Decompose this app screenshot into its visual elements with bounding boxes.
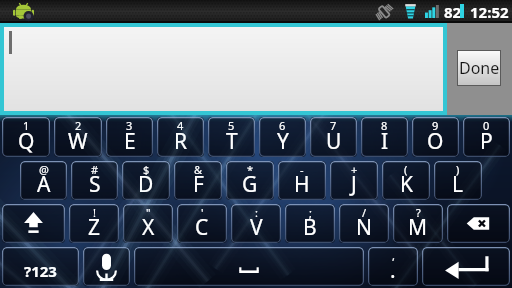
staticText: Q — [18, 127, 35, 156]
staticText: W — [68, 127, 88, 156]
staticText: : — [255, 205, 258, 220]
button[interactable]: B — [285, 204, 335, 243]
staticText: S — [89, 170, 101, 199]
button[interactable]: H — [278, 161, 326, 200]
staticText: O — [427, 127, 444, 156]
staticText: N — [356, 213, 372, 242]
button[interactable]: space — [134, 247, 364, 286]
staticText: A — [37, 170, 51, 199]
button[interactable]: A — [20, 161, 67, 200]
button[interactable]: U — [310, 117, 357, 157]
button[interactable]: I — [361, 117, 408, 157]
staticText: J — [351, 170, 357, 199]
button[interactable]: S — [71, 161, 118, 200]
button[interactable]: T — [208, 117, 255, 157]
button[interactable]: . — [368, 247, 418, 286]
staticText: C — [195, 213, 209, 242]
staticText: E — [124, 127, 136, 156]
staticText: R — [174, 127, 188, 156]
button[interactable]: G — [226, 161, 274, 200]
staticText: Done — [459, 57, 500, 79]
staticText: 9 — [432, 118, 439, 133]
button[interactable]: E — [106, 117, 153, 157]
button[interactable]: ?123 — [2, 247, 79, 286]
button[interactable]: Y — [259, 117, 306, 157]
button[interactable]: enter — [422, 247, 510, 286]
staticText: , — [392, 248, 395, 263]
staticText: 4 — [177, 118, 184, 133]
staticText: M — [408, 213, 428, 242]
button[interactable]: Z — [69, 204, 119, 243]
staticText: I — [381, 127, 389, 156]
button[interactable]: W — [54, 117, 102, 157]
staticText: T — [226, 127, 238, 156]
staticText: * — [247, 162, 254, 177]
staticText: P — [480, 127, 493, 156]
staticText: D — [138, 170, 154, 199]
staticText: " — [146, 205, 151, 220]
button[interactable]: X — [123, 204, 173, 243]
staticText: ; — [309, 205, 312, 220]
staticText: @ — [39, 162, 49, 177]
button[interactable]: Q — [2, 117, 50, 157]
staticText: + — [351, 162, 358, 177]
staticText: ? — [416, 205, 421, 220]
staticText: & — [194, 162, 203, 177]
staticText: / — [362, 205, 367, 220]
staticText: 2 — [75, 118, 82, 133]
staticText: G — [242, 170, 258, 199]
staticText: X — [142, 213, 155, 242]
button[interactable]: M — [393, 204, 443, 243]
staticText: 7 — [330, 118, 337, 133]
staticText: - — [300, 162, 304, 177]
staticText: # — [91, 162, 99, 177]
button[interactable]: L — [434, 161, 482, 200]
staticText: . — [390, 256, 396, 285]
button[interactable]: V — [231, 204, 281, 243]
button[interactable]: C — [177, 204, 227, 243]
staticText: H — [294, 170, 310, 199]
staticText: 6 — [279, 118, 286, 133]
button[interactable]: D — [122, 161, 170, 200]
staticText: U — [326, 127, 342, 156]
staticText: ) — [456, 162, 460, 177]
staticText: F — [193, 170, 204, 199]
staticText: 12:52 — [470, 2, 509, 22]
staticText: 1 — [23, 118, 30, 133]
button[interactable]: P — [463, 117, 510, 157]
staticText: Y — [277, 127, 289, 156]
staticText: 3 — [126, 118, 133, 133]
staticText: K — [400, 170, 413, 199]
button[interactable]: Done — [458, 51, 500, 85]
button[interactable]: K — [382, 161, 430, 200]
staticText: L — [452, 170, 464, 199]
staticText: 0 — [483, 118, 490, 133]
staticText: ! — [93, 205, 96, 220]
staticText: ?123 — [24, 261, 57, 281]
staticText: V — [250, 213, 263, 242]
button[interactable]: O — [412, 117, 459, 157]
staticText: Z — [88, 213, 101, 242]
staticText: B — [303, 213, 317, 242]
staticText: 82 — [444, 2, 462, 22]
staticText: $ — [143, 162, 150, 177]
staticText: 5 — [228, 118, 235, 133]
button[interactable]: R — [157, 117, 204, 157]
button[interactable]: J — [330, 161, 378, 200]
button[interactable]: shift — [2, 204, 65, 243]
button[interactable] — [4, 27, 443, 111]
staticText: 8 — [381, 118, 388, 133]
button[interactable]: F — [174, 161, 222, 200]
staticText: ' — [201, 205, 204, 220]
button[interactable]: backspace — [447, 204, 510, 243]
button[interactable]: N — [339, 204, 389, 243]
staticText: ( — [404, 162, 408, 177]
button[interactable]: mic — [83, 247, 130, 286]
